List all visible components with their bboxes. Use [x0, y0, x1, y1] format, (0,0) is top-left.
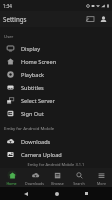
staticText: Home Screen [21, 58, 57, 66]
button[interactable]: Playback [0, 68, 112, 81]
staticText: Downloads [21, 138, 51, 146]
button[interactable]: Select Server [0, 94, 112, 107]
staticText: Select Server [21, 97, 55, 105]
button[interactable]: Account [97, 13, 110, 26]
staticText: Downloads [25, 181, 44, 186]
button[interactable]: Subtitles [0, 81, 112, 94]
button[interactable]: Home Screen [0, 55, 112, 68]
staticText: Camera Upload [21, 151, 62, 159]
button[interactable]: Back [20, 188, 31, 199]
button[interactable]: Home [0, 168, 23, 187]
button[interactable]: Display [0, 42, 112, 55]
button[interactable]: Search [68, 168, 90, 187]
staticText: Home [6, 181, 17, 186]
button[interactable]: Recents [81, 188, 92, 199]
staticText: User [4, 33, 14, 39]
button[interactable]: Home [51, 188, 62, 199]
staticText: Search [73, 181, 85, 186]
staticText: Subtitles [21, 84, 44, 92]
button[interactable]: More [90, 168, 112, 187]
staticText: Playback [21, 71, 45, 79]
button[interactable]: Downloads [23, 168, 46, 187]
staticText: Emby for Android Mobile [4, 125, 55, 131]
button[interactable]: Camera Upload [0, 148, 112, 161]
staticText: Browse [51, 181, 64, 186]
staticText: More [97, 181, 106, 186]
button[interactable]: Browse [46, 168, 68, 187]
staticText: 1:34 [3, 3, 12, 9]
button[interactable]: Downloads [0, 135, 112, 148]
staticText: Display [21, 45, 41, 53]
staticText: Settings [3, 15, 27, 23]
button[interactable]: Cast [84, 13, 97, 26]
button[interactable]: Sign Out [0, 107, 112, 120]
staticText: Sign Out [21, 110, 44, 118]
staticText: Emby for Android Mobile 3.1.1 [0, 162, 112, 167]
